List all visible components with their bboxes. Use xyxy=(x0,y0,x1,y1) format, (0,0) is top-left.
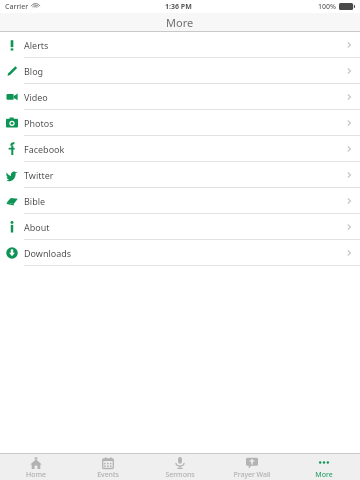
staticText: Home xyxy=(26,470,46,480)
button[interactable]: More xyxy=(288,454,360,480)
staticText: Facebook xyxy=(24,143,65,155)
staticText: Bible xyxy=(24,195,46,207)
staticText: More xyxy=(166,15,194,30)
button[interactable]: Home xyxy=(0,454,72,480)
button[interactable]: Photos xyxy=(0,110,360,136)
staticText: Photos xyxy=(24,117,54,129)
button[interactable]: Downloads xyxy=(0,240,360,266)
staticText: Video xyxy=(24,91,48,103)
staticText: Sermons xyxy=(165,470,195,480)
button[interactable]: About xyxy=(0,214,360,240)
button[interactable]: Facebook xyxy=(0,136,360,162)
button[interactable]: Video xyxy=(0,84,360,110)
staticText: Carrier xyxy=(5,2,29,12)
button[interactable]: Prayer Wall xyxy=(216,454,288,480)
staticText: 1:36 PM xyxy=(165,2,192,12)
staticText: About xyxy=(24,221,50,233)
staticText: Alerts xyxy=(24,39,49,51)
staticText: Events xyxy=(97,470,119,480)
staticText: Twitter xyxy=(24,169,54,181)
button[interactable]: Blog xyxy=(0,58,360,84)
staticText: Prayer Wall xyxy=(233,470,271,480)
button[interactable]: Bible xyxy=(0,188,360,214)
staticText: Downloads xyxy=(24,247,72,259)
button[interactable]: Events xyxy=(72,454,144,480)
staticText: Blog xyxy=(24,65,44,77)
button[interactable]: Twitter xyxy=(0,162,360,188)
staticText: 100% xyxy=(318,2,336,12)
staticText: More xyxy=(315,470,333,480)
button[interactable]: Alerts xyxy=(0,32,360,58)
button[interactable]: Sermons xyxy=(144,454,216,480)
